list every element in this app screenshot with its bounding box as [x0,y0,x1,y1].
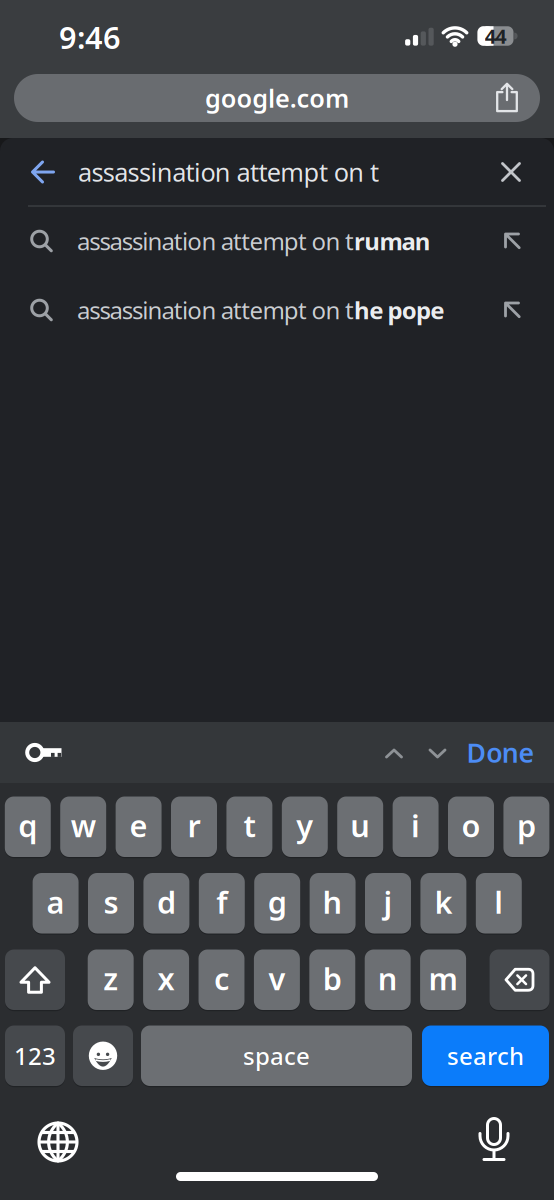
staticText: g [268,881,287,922]
button[interactable]: assassination attempt on t [0,275,554,344]
button[interactable]: h [310,873,356,933]
button[interactable]: Clear text [487,162,554,182]
staticText: f [216,881,227,922]
button[interactable]: p [503,796,549,857]
staticText: ruman [354,225,431,257]
staticText: assassination attempt on t [77,225,354,257]
staticText: search [447,1040,524,1072]
button[interactable]: Share [495,82,519,113]
button[interactable]: 123 [5,1025,65,1086]
button[interactable]: w [60,796,106,857]
staticText: b [323,958,342,999]
staticText: s [103,881,118,922]
button[interactable]: a [33,873,79,933]
staticText: q [18,805,37,846]
staticText: l [494,881,503,922]
button[interactable]: x [143,949,189,1010]
staticText: google.com [205,81,349,115]
button[interactable]: z [88,949,134,1010]
staticText: n [378,958,398,999]
staticText: x [158,958,175,999]
staticText: d [157,881,176,922]
staticText: h [323,881,343,922]
staticText: m [429,958,458,999]
button[interactable]: t [226,796,272,857]
button[interactable]: Back [0,160,78,184]
staticText: z [103,958,118,999]
button[interactable]: v [254,949,300,1010]
button[interactable]: s [88,873,134,933]
button[interactable]: assassination attempt on t [0,206,554,275]
button[interactable]: g [254,873,300,933]
button[interactable]: f [199,873,245,933]
button[interactable]: Emoji [73,1025,133,1086]
staticText: y [296,805,313,846]
button[interactable]: e [116,796,162,857]
staticText: 123 [14,1040,56,1072]
staticText: o [461,805,480,846]
staticText: p [517,805,536,846]
button[interactable]: Dictate [477,1117,511,1163]
button[interactable]: m [420,949,466,1010]
staticText: space [243,1040,310,1072]
button[interactable]: Delete [489,949,549,1010]
staticText: e [130,805,148,846]
staticText: a [47,881,65,922]
button[interactable]: Passwords [25,739,65,765]
button[interactable]: r [171,796,217,857]
button[interactable]: k [420,873,466,933]
button[interactable]: Next keyboard [37,1121,79,1163]
button[interactable]: Shift [5,949,65,1010]
button[interactable]: Previous field [385,748,403,758]
staticText: j [383,881,392,922]
staticText: assassination attempt on t [77,294,354,326]
button[interactable]: Done [466,735,534,770]
staticText: Done [466,735,534,770]
button[interactable]: d [143,873,189,933]
staticText: he pope [354,294,444,326]
staticText: 44 [485,23,506,49]
button[interactable]: n [365,949,411,1010]
button[interactable]: google.com [14,74,540,122]
staticText: r [187,805,200,846]
staticText: k [434,881,452,922]
button[interactable]: Next field [428,748,446,758]
staticText: i [411,805,420,846]
button[interactable]: u [337,796,383,857]
button[interactable]: b [309,949,355,1010]
staticText: u [350,805,370,846]
button[interactable]: search [422,1025,549,1086]
button[interactable]: j [365,873,411,933]
button[interactable]: c [198,949,244,1010]
button[interactable]: space [141,1025,412,1086]
button[interactable]: i [393,796,439,857]
button[interactable]: l [476,873,522,933]
button[interactable]: o [448,796,494,857]
staticText: c [214,958,229,999]
staticText: v [268,958,285,999]
staticText: assassination attempt on t [78,155,379,189]
button[interactable]: y [282,796,328,857]
button[interactable]: q [5,796,51,857]
staticText: t [243,805,255,846]
staticText: w [71,805,96,846]
staticText: 9:46 [59,17,121,57]
